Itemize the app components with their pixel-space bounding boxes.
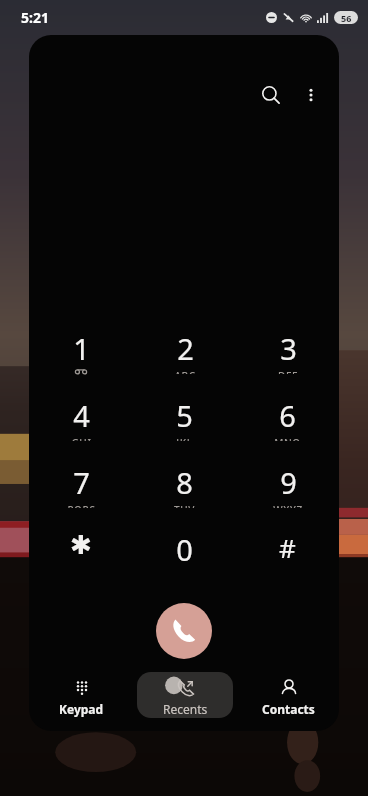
- staticText: DEF: [278, 369, 298, 374]
- staticText: 5: [176, 396, 193, 435]
- staticText: 56: [341, 12, 352, 24]
- button[interactable]: Search: [251, 75, 291, 115]
- staticText: ✱: [70, 530, 92, 560]
- button[interactable]: Contacts: [240, 672, 336, 718]
- staticText: WXYZ: [273, 503, 303, 508]
- button[interactable]: Recents: [137, 672, 233, 718]
- staticText: PQRS: [67, 503, 96, 508]
- button[interactable]: Keypad: [33, 672, 129, 718]
- staticText: ABC: [174, 369, 196, 374]
- staticText: MNO: [274, 436, 301, 441]
- staticText: 5:21: [21, 8, 49, 27]
- staticText: Recents: [163, 701, 208, 717]
- staticText: 7: [73, 463, 90, 502]
- button[interactable]: 4: [29, 396, 133, 441]
- staticText: GHI: [71, 436, 92, 441]
- button[interactable]: ✱: [29, 530, 133, 575]
- button[interactable]: 5: [133, 396, 236, 441]
- staticText: 9: [280, 463, 297, 502]
- button[interactable]: Call: [156, 603, 212, 659]
- staticText: 6: [279, 396, 296, 435]
- staticText: 2: [177, 329, 194, 368]
- staticText: Keypad: [59, 701, 104, 717]
- button[interactable]: 9: [236, 463, 339, 508]
- staticText: JKL: [176, 436, 193, 441]
- staticText: 8: [176, 463, 193, 502]
- button[interactable]: 7: [29, 463, 133, 508]
- button[interactable]: 0: [133, 530, 236, 575]
- staticText: TUV: [174, 503, 195, 508]
- staticText: #: [279, 530, 296, 565]
- button[interactable]: 6: [236, 396, 339, 441]
- staticText: 4: [73, 396, 90, 435]
- button[interactable]: #: [236, 530, 339, 575]
- staticText: 0: [176, 530, 193, 569]
- button[interactable]: More options: [291, 75, 331, 115]
- staticText: Contacts: [262, 701, 315, 717]
- button[interactable]: 8: [133, 463, 236, 508]
- button[interactable]: 1: [29, 329, 133, 374]
- staticText: 1: [73, 329, 90, 368]
- button[interactable]: 3: [236, 329, 339, 374]
- staticText: 3: [280, 329, 297, 368]
- button[interactable]: 2: [133, 329, 236, 374]
